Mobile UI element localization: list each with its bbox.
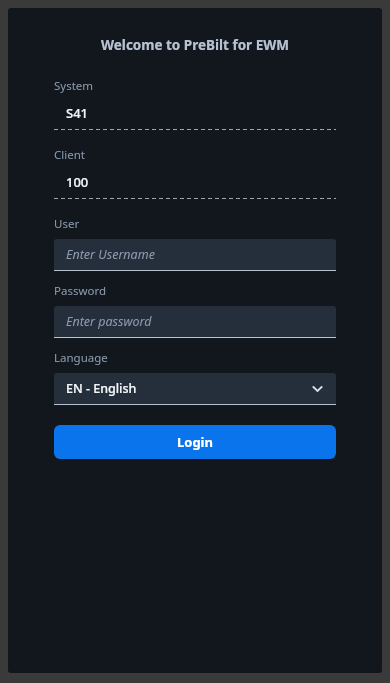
staticText: S41 xyxy=(66,104,89,122)
button[interactable]: Enter Username xyxy=(54,239,336,271)
staticText: Password xyxy=(54,283,107,299)
staticText: Login xyxy=(177,433,213,451)
button[interactable]: System xyxy=(54,78,336,130)
staticText: Client xyxy=(54,147,85,163)
staticText: Language xyxy=(54,350,108,366)
staticText: Enter password xyxy=(66,313,152,330)
button[interactable]: Enter password xyxy=(54,306,336,338)
staticText: Welcome to PreBilt for EWM xyxy=(8,36,382,54)
staticText: System xyxy=(54,78,94,94)
button[interactable]: Client xyxy=(54,147,336,199)
staticText: User xyxy=(54,216,80,232)
staticText: Enter Username xyxy=(66,246,155,263)
button[interactable]: Select language xyxy=(54,373,336,405)
staticText: 100 xyxy=(66,173,89,191)
staticText: EN - English xyxy=(66,380,311,397)
button[interactable]: Login xyxy=(54,425,336,459)
